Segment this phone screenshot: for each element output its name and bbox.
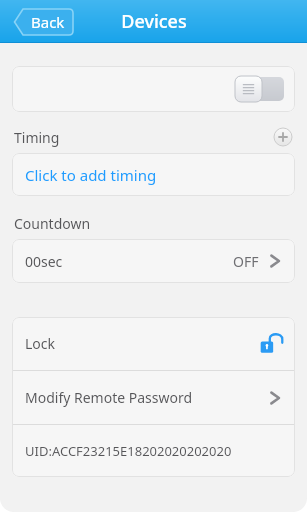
staticText: Lock — [25, 334, 56, 353]
staticText: 00sec — [25, 252, 63, 271]
staticText: Modify Remote Password — [25, 388, 193, 407]
other: Open — [266, 389, 284, 407]
button[interactable]: Back — [13, 8, 74, 36]
staticText: Timing — [14, 128, 60, 147]
staticText: Countdown — [14, 214, 91, 233]
button[interactable]: Lock — [259, 332, 283, 356]
button[interactable]: Add timing — [273, 127, 293, 147]
button[interactable]: Modify Remote Password — [12, 371, 295, 424]
other: Open — [266, 252, 284, 270]
staticText: Back — [31, 12, 65, 32]
button[interactable]: Click to add timing — [12, 153, 295, 196]
staticText: Click to add timing — [25, 165, 157, 185]
staticText: Devices — [121, 9, 187, 34]
staticText: OFF — [233, 252, 259, 271]
staticText: UID:ACCF23215E18202020202020 — [25, 442, 232, 460]
button[interactable]: 00sec — [12, 239, 295, 283]
button[interactable]: Lock — [12, 317, 295, 370]
button[interactable]: Power toggle — [235, 76, 285, 102]
